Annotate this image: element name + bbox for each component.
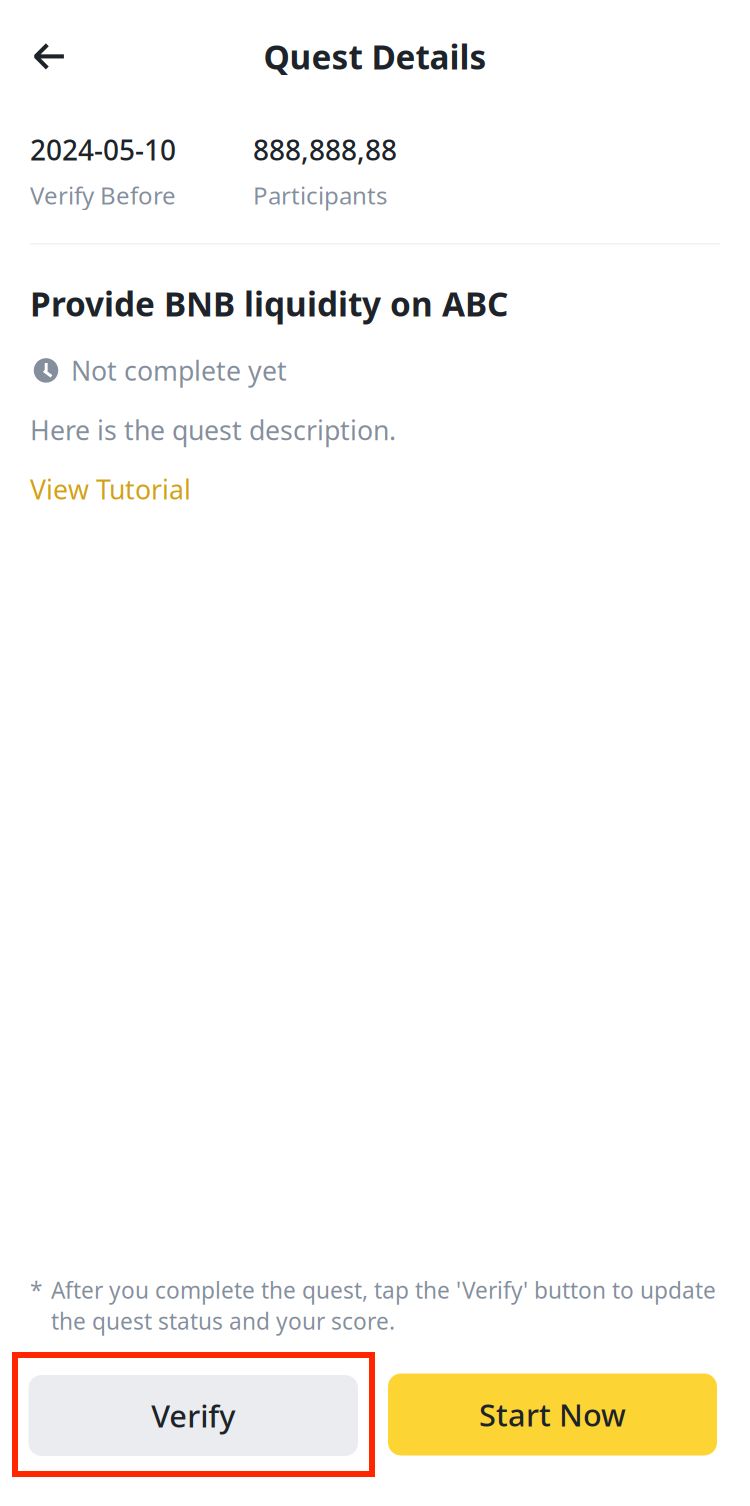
staticText: 2024-05-10: [30, 131, 176, 168]
staticText: Quest Details: [263, 34, 486, 79]
staticText: 888,888,88: [253, 131, 397, 168]
staticText: Verify Before: [30, 179, 176, 211]
staticText: View Tutorial: [30, 471, 191, 507]
staticText: Verify: [151, 1395, 235, 1436]
staticText: Not complete yet: [71, 353, 287, 388]
staticText: Here is the quest description.: [30, 412, 396, 447]
staticText: Provide BNB liquidity on ABC: [30, 281, 508, 326]
button[interactable]: Start Now: [388, 1373, 717, 1455]
button[interactable]: View Tutorial: [30, 471, 191, 507]
staticText: Participants: [253, 179, 387, 211]
staticText: *: [30, 1275, 42, 1305]
staticText: Start Now: [479, 1394, 626, 1435]
button[interactable]: Verify: [28, 1375, 358, 1456]
staticText: After you complete the quest, tap the 'V…: [51, 1275, 716, 1336]
button[interactable]: Back: [0, 34, 81, 79]
